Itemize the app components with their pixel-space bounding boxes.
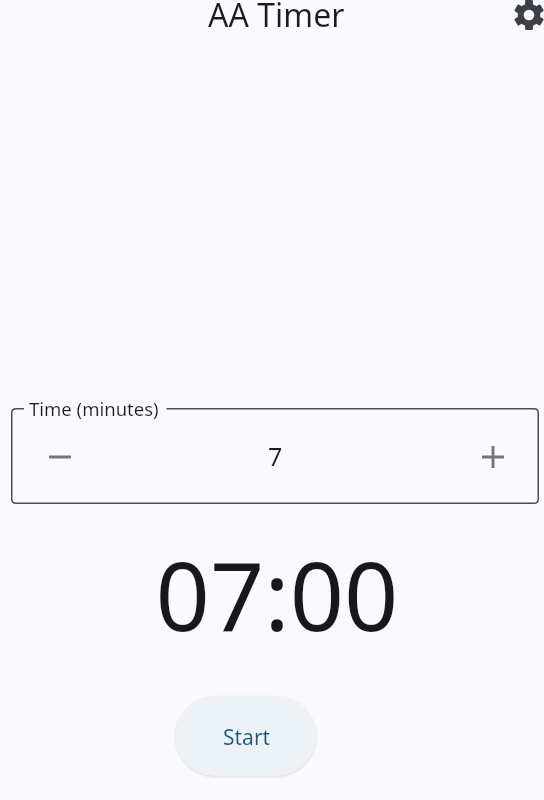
button[interactable]: Decrease minutes	[36, 433, 84, 481]
button[interactable]: Settings	[508, 0, 544, 36]
button[interactable]: Increase minutes	[469, 433, 517, 481]
staticText: Time (minutes)	[29, 396, 159, 421]
staticText: AA Timer	[208, 0, 345, 37]
staticText: 07:00	[5, 529, 544, 658]
button[interactable]: Start	[175, 696, 316, 776]
staticText: 7	[268, 439, 283, 473]
staticText: Start	[223, 723, 271, 752]
